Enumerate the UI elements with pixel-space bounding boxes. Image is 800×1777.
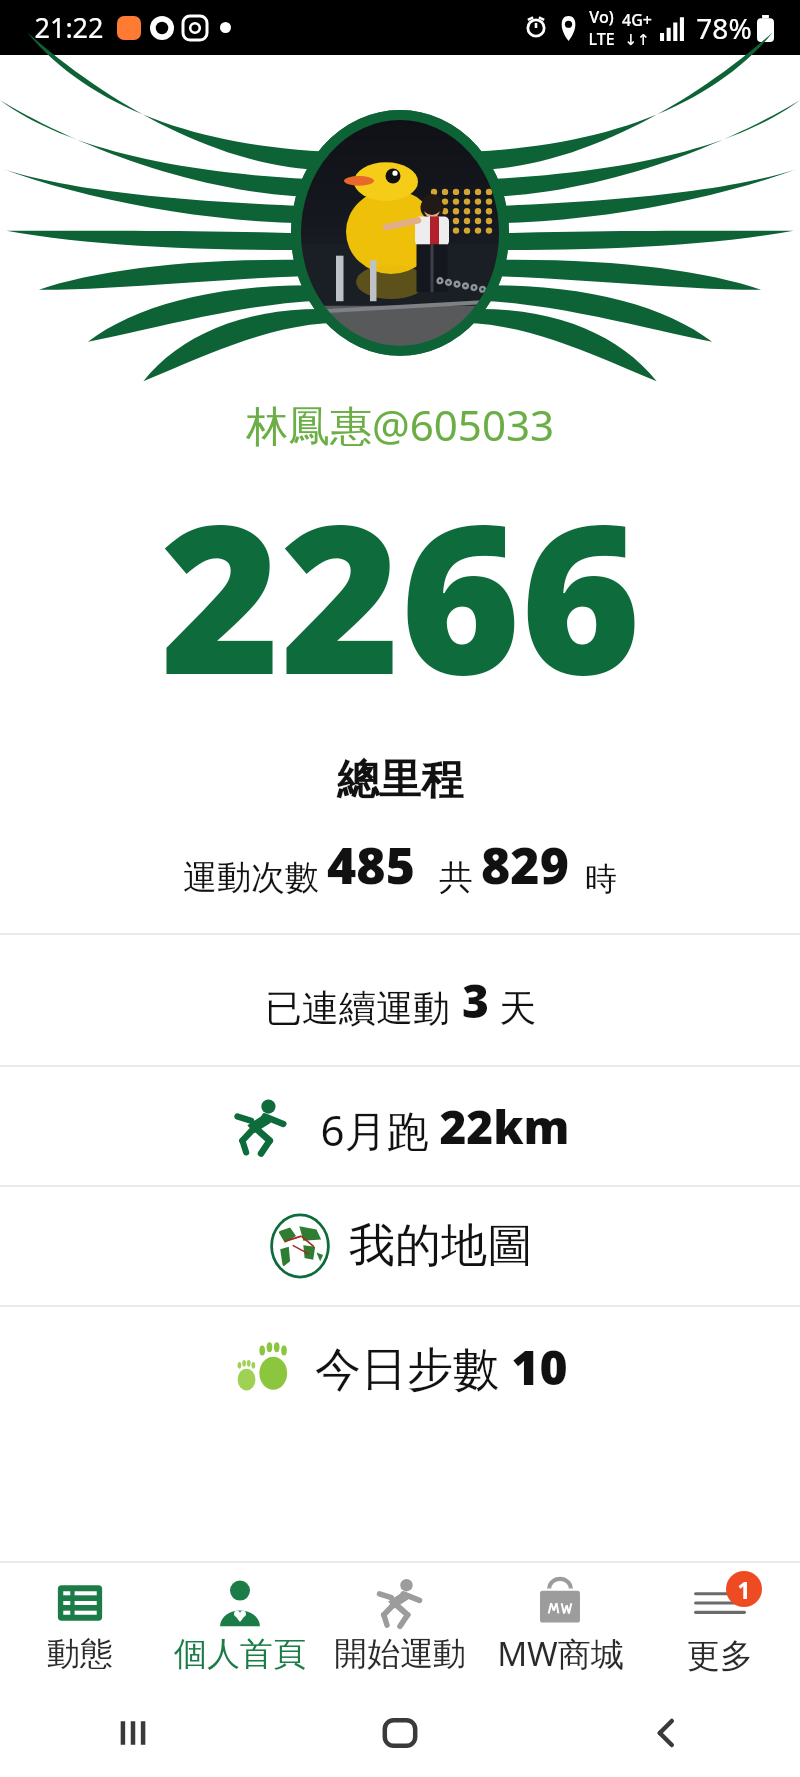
staticText: 829 (481, 831, 569, 899)
staticText: 林鳳惠@605033 (246, 396, 554, 453)
button[interactable]: 6月跑 (0, 1067, 800, 1185)
button[interactable]: More (640, 1561, 800, 1689)
staticText: 更多 (687, 1635, 753, 1677)
button[interactable]: Recents (0, 1689, 266, 1777)
button[interactable]: 我的地圖 (0, 1187, 800, 1305)
staticText: 總里程 (337, 754, 463, 807)
button[interactable]: 開始運動 (320, 1561, 480, 1689)
staticText: 1 (737, 1574, 751, 1605)
staticText: 開始運動 (334, 1633, 466, 1675)
button[interactable]: Profile avatar (0, 55, 800, 390)
staticText: 22km (439, 1095, 570, 1158)
staticText: 運動次數 (183, 856, 319, 899)
staticText: LTE (588, 28, 615, 50)
button[interactable]: 動態 (0, 1561, 160, 1689)
staticText: 共 (439, 856, 473, 899)
staticText: 2266 (160, 455, 641, 734)
staticText: 動態 (47, 1633, 113, 1675)
button[interactable]: Home (266, 1689, 533, 1777)
other: Profile avatar (0, 58, 800, 388)
button[interactable]: Back (533, 1689, 800, 1777)
staticText: 我的地圖 (349, 1217, 533, 1275)
staticText: 個人首頁 (174, 1633, 306, 1675)
button[interactable]: 個人首頁 (160, 1561, 320, 1689)
staticText: 3 (462, 969, 489, 1032)
staticText: 時 (585, 859, 617, 899)
staticText: 天 (499, 985, 536, 1032)
button[interactable]: 今日步數 (0, 1307, 800, 1425)
staticText: 今日步數 (315, 1341, 499, 1399)
button[interactable]: MW商城 (480, 1561, 640, 1689)
staticText: 4G+ (622, 9, 652, 31)
staticText: ↓↑ (624, 31, 650, 48)
button[interactable]: 已連續運動 (0, 935, 800, 1065)
staticText: 已連續運動 (265, 985, 450, 1032)
other: More (691, 1574, 749, 1632)
staticText: 485 (327, 831, 415, 899)
staticText: 6月跑 (320, 1101, 429, 1158)
staticText: 10 (511, 1334, 568, 1399)
staticText: 78% (696, 9, 752, 47)
staticText: 21:22 (34, 9, 104, 46)
staticText: Vo) (589, 6, 614, 28)
staticText: MW商城 (497, 1631, 624, 1676)
